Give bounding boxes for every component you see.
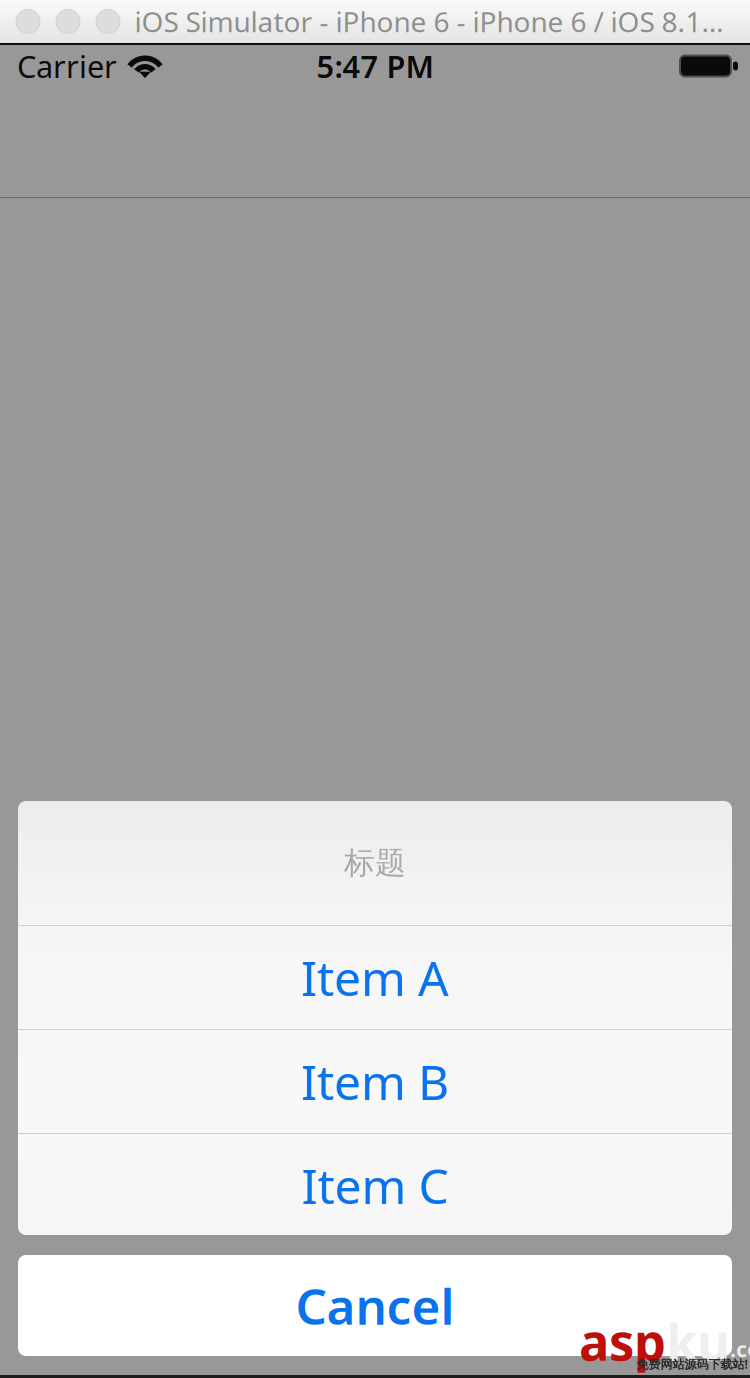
staticText: Cancel (295, 1273, 454, 1338)
staticText: Item C (301, 1154, 448, 1217)
button[interactable]: Zoom (96, 9, 120, 33)
button[interactable]: Close (16, 9, 40, 33)
button[interactable]: Cancel (18, 1255, 732, 1356)
staticText: 标题 (344, 844, 406, 882)
button[interactable]: Item B (18, 1030, 732, 1133)
button[interactable]: Item C (18, 1134, 732, 1237)
staticText: Carrier (17, 46, 117, 86)
button[interactable]: Minimize (56, 9, 80, 33)
button[interactable]: Item A (18, 926, 732, 1029)
staticText: asp (579, 1307, 666, 1375)
staticText: Item B (301, 1050, 449, 1113)
staticText: ku (666, 1307, 730, 1375)
staticText: Item A (301, 946, 449, 1009)
staticText: 免费网站源码下载站! (636, 1356, 747, 1372)
staticText: 5:47 PM (316, 46, 433, 86)
staticText: iOS Simulator - iPhone 6 - iPhone 6 / iO… (134, 3, 723, 40)
staticText: .com (730, 1335, 750, 1363)
